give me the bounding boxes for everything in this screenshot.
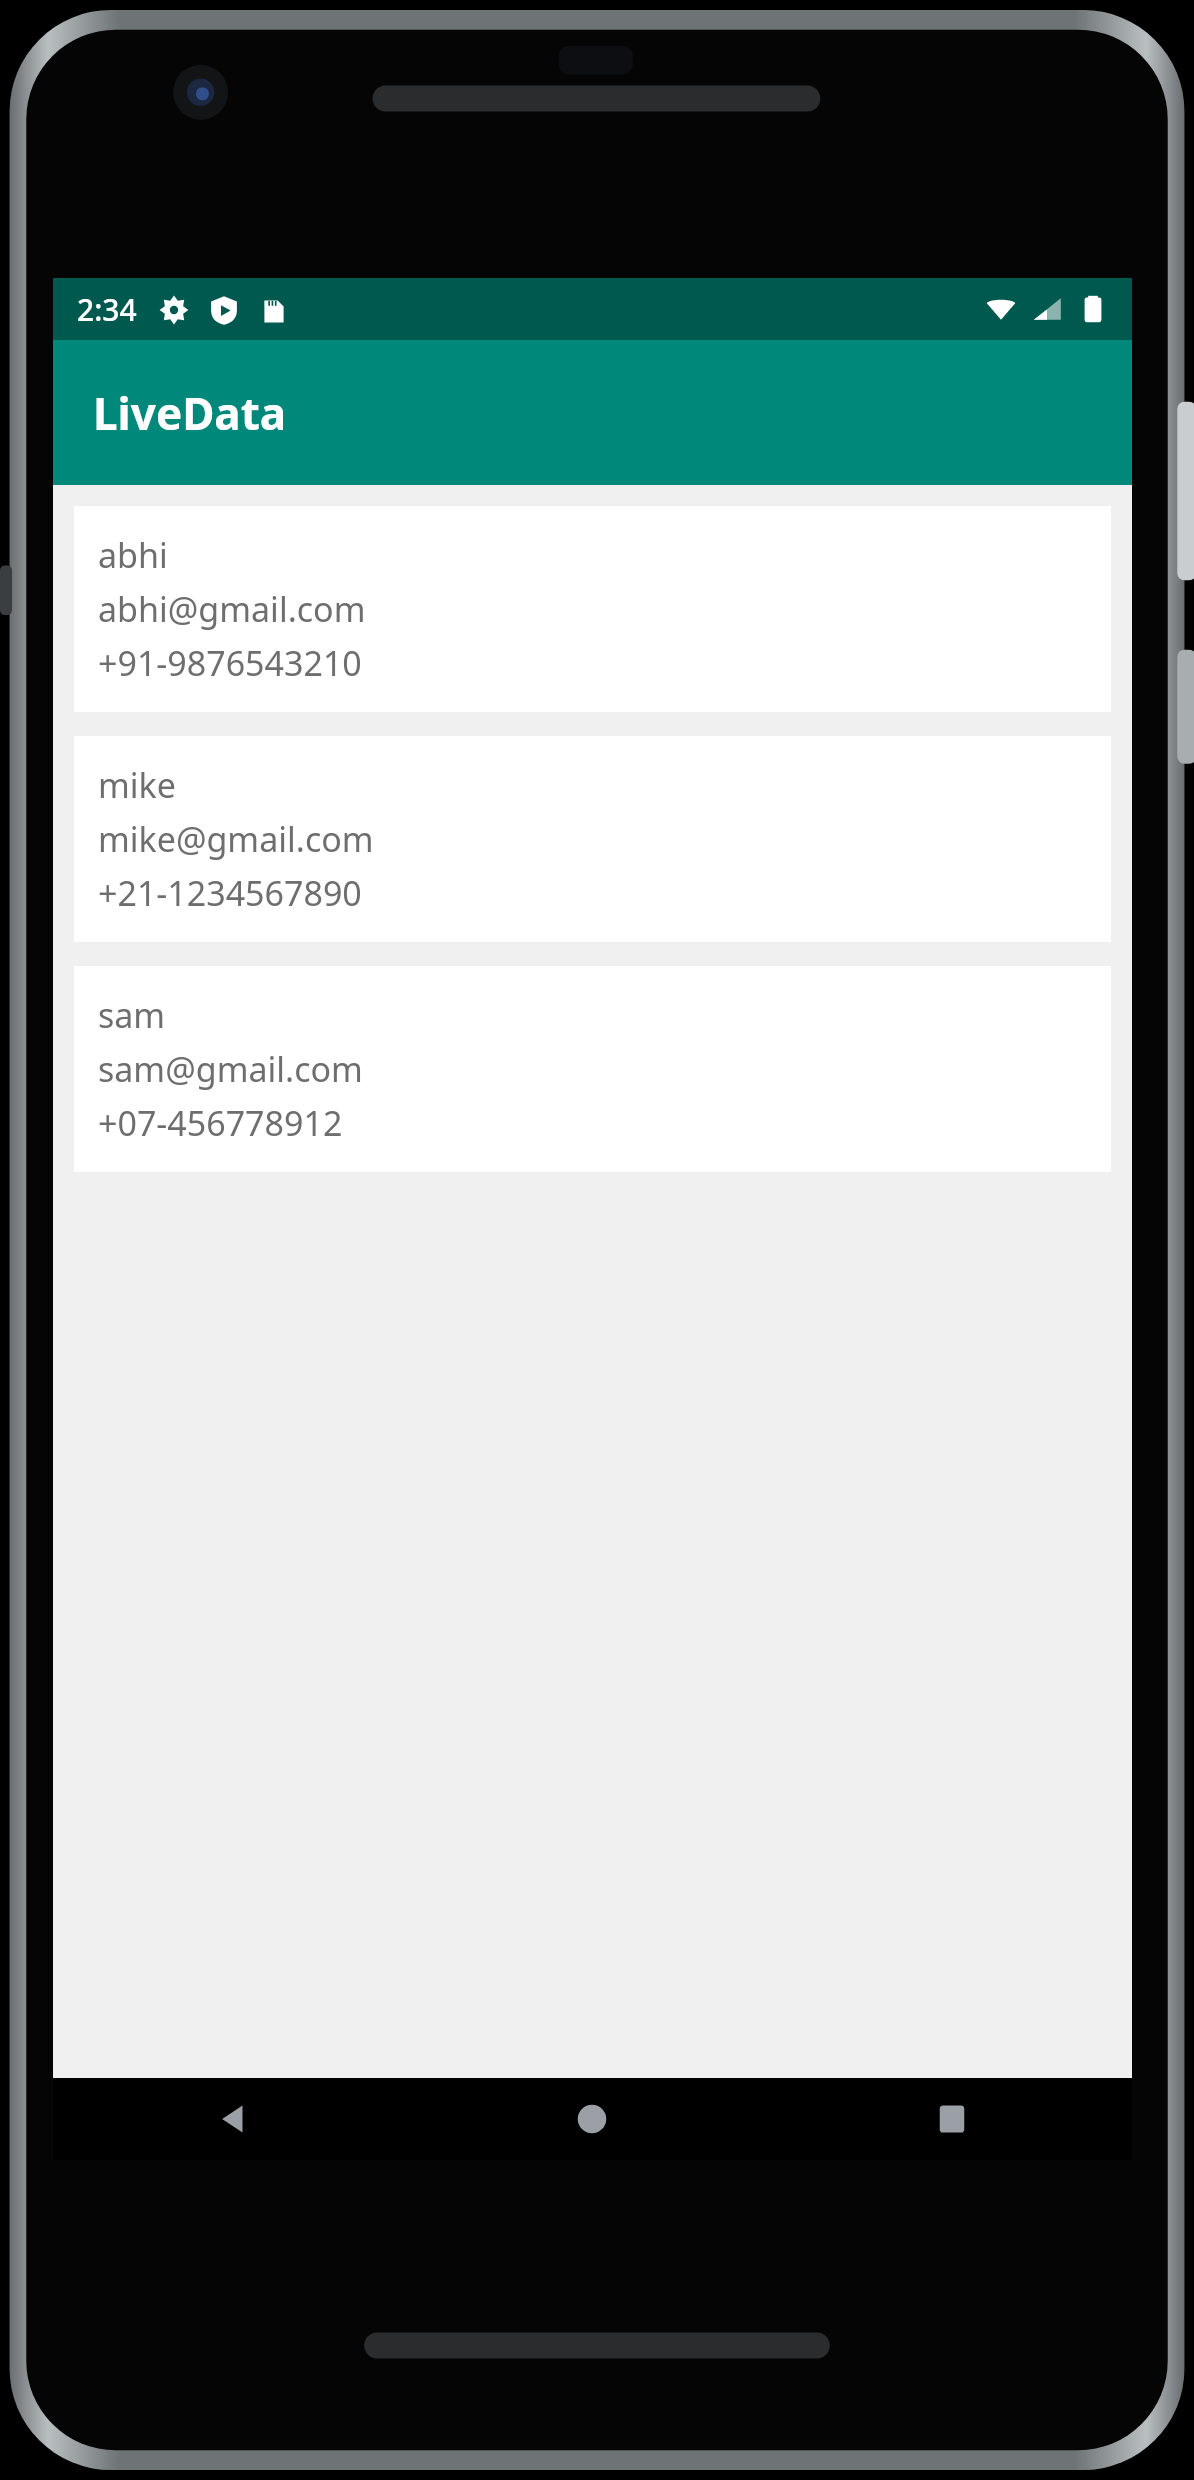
staticText: abhi@gmail.com (98, 586, 366, 632)
staticText: 2:34 (77, 289, 137, 330)
button[interactable]: abhi (74, 506, 1111, 712)
staticText: +07-456778912 (98, 1100, 343, 1146)
button[interactable]: sam (74, 966, 1111, 1172)
button[interactable]: Recents (772, 2078, 1132, 2160)
button[interactable]: mike (74, 736, 1111, 942)
staticText: sam@gmail.com (98, 1046, 363, 1092)
staticText: mike@gmail.com (98, 816, 374, 862)
button[interactable]: Home (412, 2078, 772, 2160)
staticText: abhi (98, 532, 168, 578)
staticText: mike (98, 762, 176, 808)
staticText: +21-1234567890 (98, 870, 362, 916)
staticText: +91-9876543210 (98, 640, 362, 686)
staticText: LiveData (93, 383, 287, 443)
staticText: sam (98, 992, 166, 1038)
button[interactable]: Back (53, 2078, 412, 2160)
